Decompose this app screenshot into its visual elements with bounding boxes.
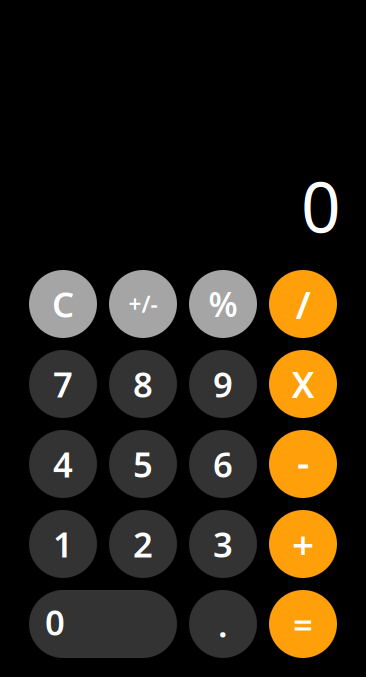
staticText: 0 (45, 599, 65, 645)
staticText: 1 (53, 521, 73, 567)
button[interactable]: Divide (269, 270, 337, 338)
button[interactable]: Plus minus (109, 270, 177, 338)
button[interactable]: 1 (29, 510, 97, 578)
staticText: 6 (213, 441, 233, 487)
staticText: 0 (301, 160, 341, 252)
button[interactable]: Percent (189, 270, 257, 338)
button[interactable]: 2 (109, 510, 177, 578)
button[interactable]: 4 (29, 430, 97, 498)
button[interactable]: Clear (29, 270, 97, 338)
staticText: 7 (53, 361, 73, 407)
button[interactable]: Equals (269, 590, 337, 658)
staticText: 3 (213, 521, 233, 567)
button[interactable]: 3 (189, 510, 257, 578)
staticText: X (291, 360, 314, 408)
staticText: / (295, 278, 310, 330)
button[interactable]: Multiply (269, 350, 337, 418)
staticText: 2 (133, 521, 153, 567)
staticText: 9 (213, 361, 233, 407)
staticText: = (293, 601, 313, 647)
staticText: C (52, 281, 74, 327)
button[interactable]: 6 (189, 430, 257, 498)
button[interactable]: 9 (189, 350, 257, 418)
button[interactable]: 5 (109, 430, 177, 498)
button[interactable]: 7 (29, 350, 97, 418)
staticText: 8 (133, 361, 153, 407)
staticText: + (292, 518, 314, 570)
staticText: . (218, 601, 228, 647)
staticText: - (297, 436, 309, 487)
button[interactable]: Plus (269, 510, 337, 578)
staticText: 5 (133, 441, 153, 487)
staticText: +/- (128, 289, 157, 319)
button[interactable]: 8 (109, 350, 177, 418)
button[interactable]: Minus (269, 430, 337, 498)
staticText: 4 (53, 441, 73, 487)
button[interactable]: Decimal point (189, 590, 257, 658)
staticText: % (208, 282, 237, 326)
button[interactable]: 0 (29, 590, 177, 658)
